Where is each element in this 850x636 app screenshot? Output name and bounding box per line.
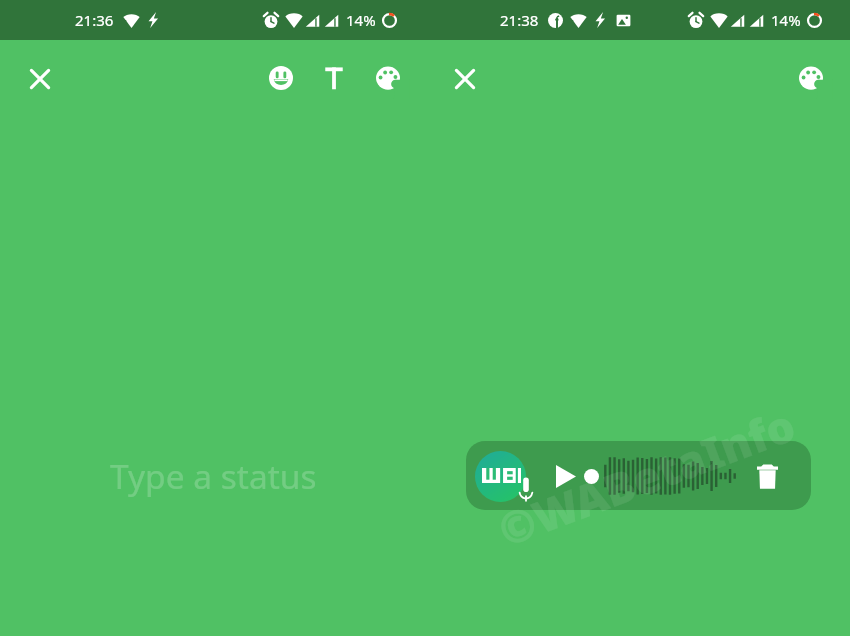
staticText: Type a status	[110, 453, 317, 499]
button[interactable]: Color palette	[365, 55, 411, 101]
staticText: 21:36	[75, 10, 114, 30]
button[interactable]: Delete voice note	[748, 459, 786, 495]
button[interactable]: Add text	[311, 55, 357, 101]
button[interactable]: Delete voice note	[466, 441, 811, 510]
button[interactable]: Close	[17, 56, 63, 102]
button[interactable]: Type a status	[110, 453, 317, 499]
button[interactable]: Emoji	[258, 55, 304, 101]
button[interactable]: Close	[442, 56, 488, 102]
button[interactable]: Color palette	[788, 55, 834, 101]
staticText: 14%	[346, 10, 376, 30]
staticText: ©WABetaInfo	[490, 394, 800, 552]
staticText: 21:38	[500, 10, 539, 30]
staticText: 14%	[771, 10, 801, 30]
